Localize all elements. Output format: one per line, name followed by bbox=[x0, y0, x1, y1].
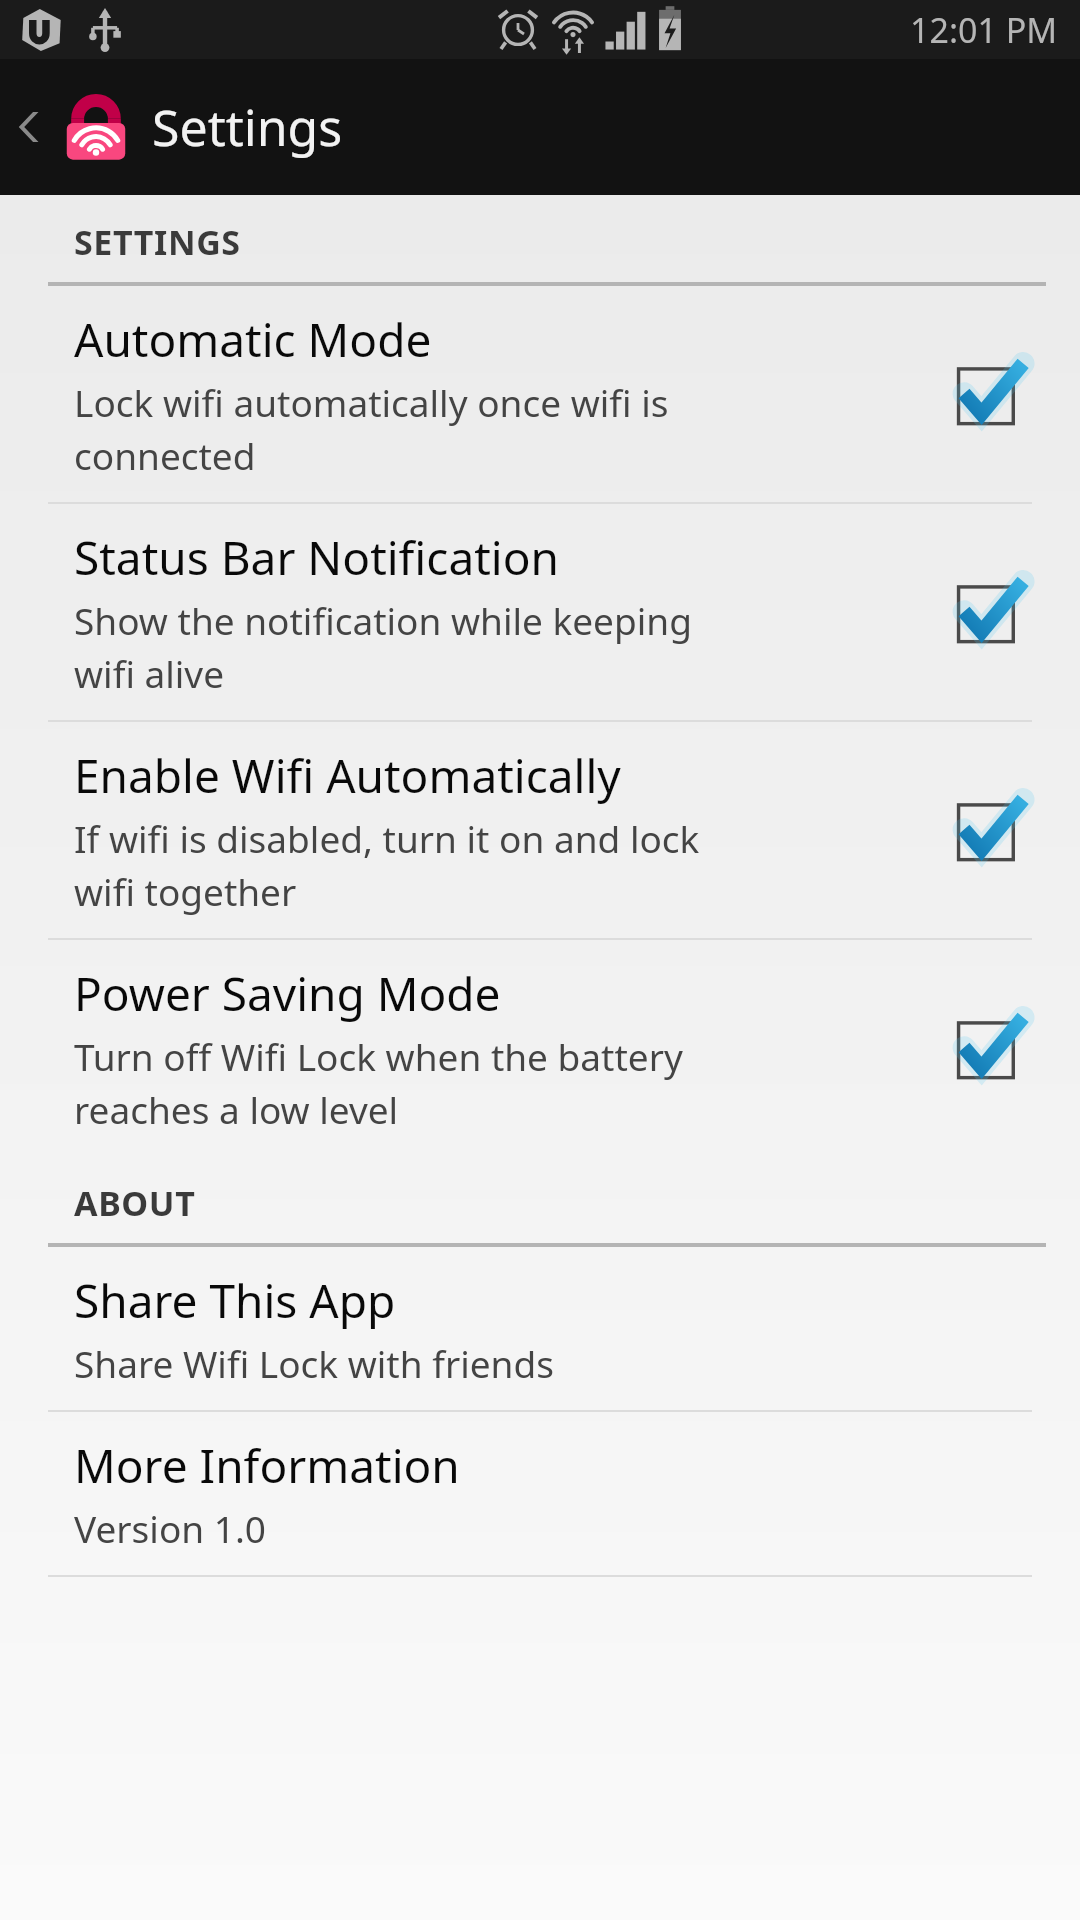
button[interactable]: Enable Wifi Automatically toggle bbox=[954, 792, 1030, 868]
staticText: ABOUT bbox=[74, 1180, 196, 1226]
button[interactable]: Power Saving Mode bbox=[0, 940, 1080, 1156]
staticText: Automatic Mode bbox=[74, 308, 432, 371]
button[interactable]: Automatic Mode bbox=[0, 286, 1080, 502]
button[interactable]: Status Bar Notification toggle bbox=[954, 574, 1030, 650]
button[interactable]: Share This App bbox=[0, 1247, 1080, 1410]
staticText: Share This App bbox=[74, 1269, 396, 1332]
button[interactable]: Status Bar Notification bbox=[0, 504, 1080, 720]
button[interactable]: Enable Wifi Automatically bbox=[0, 722, 1080, 938]
button[interactable]: More Information bbox=[0, 1412, 1080, 1575]
staticText: Version 1.0 bbox=[74, 1503, 266, 1553]
staticText: Settings bbox=[152, 93, 343, 161]
staticText: Status Bar Notification bbox=[74, 526, 559, 589]
staticText: Power Saving Mode bbox=[74, 962, 501, 1025]
staticText: Show the notification while keeping wifi… bbox=[74, 595, 692, 698]
staticText: SETTINGS bbox=[74, 219, 241, 265]
staticText: Share Wifi Lock with friends bbox=[74, 1338, 554, 1388]
staticText: Turn off Wifi Lock when the battery reac… bbox=[74, 1031, 683, 1134]
staticText: If wifi is disabled, turn it on and lock… bbox=[74, 813, 700, 916]
staticText: Enable Wifi Automatically bbox=[74, 744, 621, 807]
staticText: 12:01 PM bbox=[910, 7, 1058, 53]
staticText: Lock wifi automatically once wifi is con… bbox=[74, 377, 669, 480]
button[interactable]: Back bbox=[0, 59, 62, 195]
button[interactable]: Automatic Mode toggle bbox=[954, 356, 1030, 432]
button[interactable]: Power Saving Mode toggle bbox=[954, 1010, 1030, 1086]
staticText: More Information bbox=[74, 1434, 460, 1497]
